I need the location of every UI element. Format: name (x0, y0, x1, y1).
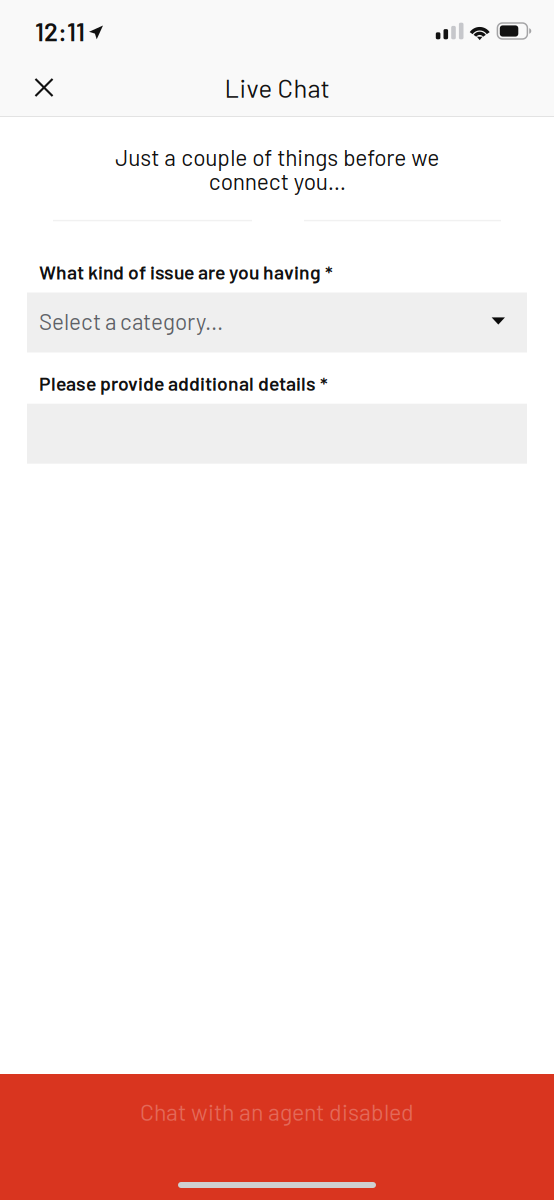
staticText: 12:11 (35, 16, 85, 46)
staticText: Live Chat (224, 72, 329, 103)
staticText: What kind of issue are you having * (39, 260, 333, 283)
staticText: Select a category... (39, 307, 223, 334)
button[interactable]: Close (18, 64, 70, 114)
button[interactable]: Chat with an agent disabled (0, 1074, 554, 1156)
staticText: Please provide additional details * (39, 371, 328, 395)
button[interactable]: Select a category... (27, 292, 527, 352)
staticText: Chat with an agent disabled (140, 1098, 414, 1125)
staticText: Just a couple of things before we connec… (115, 145, 439, 193)
